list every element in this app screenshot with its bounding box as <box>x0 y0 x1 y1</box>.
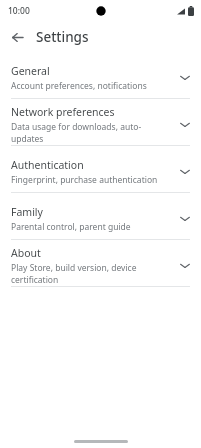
staticText: Settings <box>36 28 89 46</box>
button[interactable]: Authentication <box>0 151 201 198</box>
staticText: Network preferences <box>11 105 115 119</box>
staticText: Data usage for downloads, auto-updates <box>11 121 172 145</box>
staticText: About <box>11 246 41 260</box>
staticText: General <box>11 64 50 78</box>
staticText: Authentication <box>11 158 84 172</box>
staticText: Family <box>11 205 43 219</box>
button[interactable]: General <box>0 57 201 104</box>
staticText: Fingerprint, purchase authentication <box>11 174 158 186</box>
staticText: Play Store, build version, device certif… <box>11 262 172 286</box>
staticText: 10:00 <box>8 5 30 17</box>
button[interactable]: Family <box>0 198 201 245</box>
staticText: Parental control, parent guide <box>11 221 131 233</box>
button[interactable]: Back <box>5 25 29 49</box>
staticText: Account preferences, notifications <box>11 80 147 92</box>
button[interactable]: Network preferences <box>0 104 201 151</box>
button[interactable]: About <box>0 245 201 292</box>
